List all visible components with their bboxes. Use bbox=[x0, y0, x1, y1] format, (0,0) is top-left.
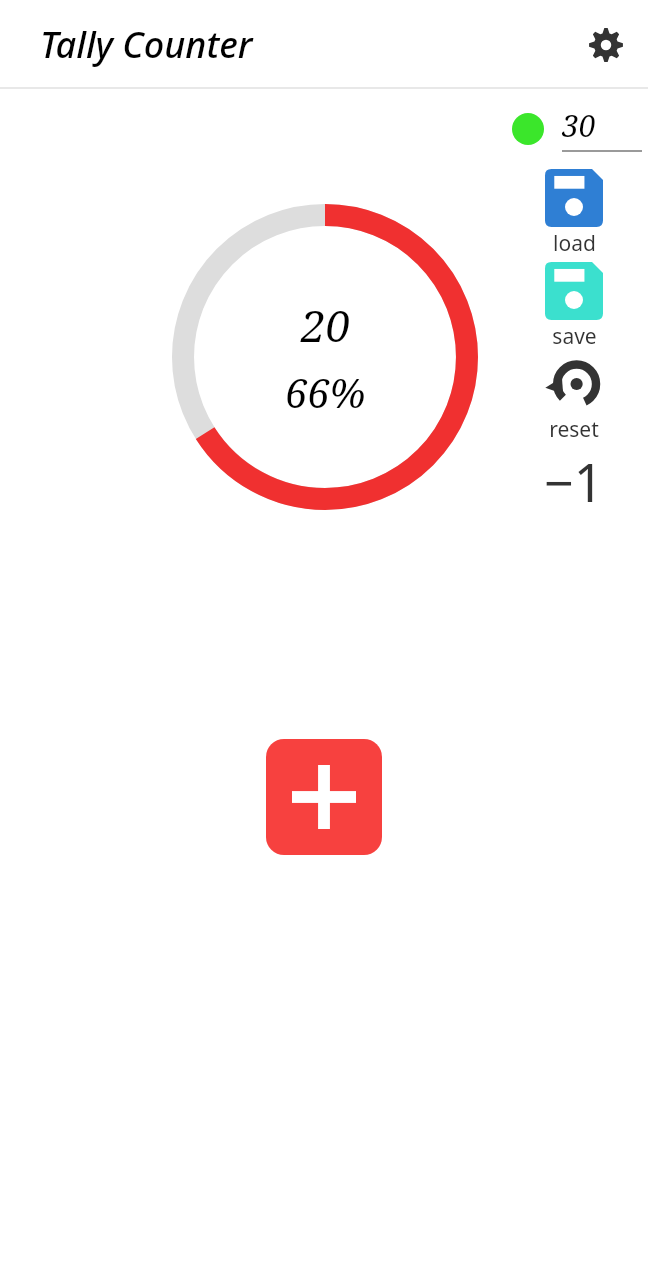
button[interactable]: Increment bbox=[266, 739, 382, 855]
button[interactable]: Reset bbox=[500, 355, 648, 444]
button[interactable]: Decrement bbox=[500, 446, 648, 510]
button[interactable]: Settings bbox=[578, 17, 634, 73]
staticText: −1 bbox=[544, 446, 604, 510]
staticText: reset bbox=[549, 415, 599, 444]
staticText: Tally Counter bbox=[40, 20, 253, 69]
staticText: 66% bbox=[285, 365, 366, 419]
staticText: load bbox=[553, 229, 596, 258]
button[interactable]: 30 bbox=[512, 105, 642, 152]
button[interactable]: Load bbox=[500, 169, 648, 258]
staticText: save bbox=[552, 322, 597, 351]
staticText: 20 bbox=[301, 295, 351, 355]
staticText: 30 bbox=[562, 105, 596, 146]
button[interactable]: Save bbox=[500, 262, 648, 351]
